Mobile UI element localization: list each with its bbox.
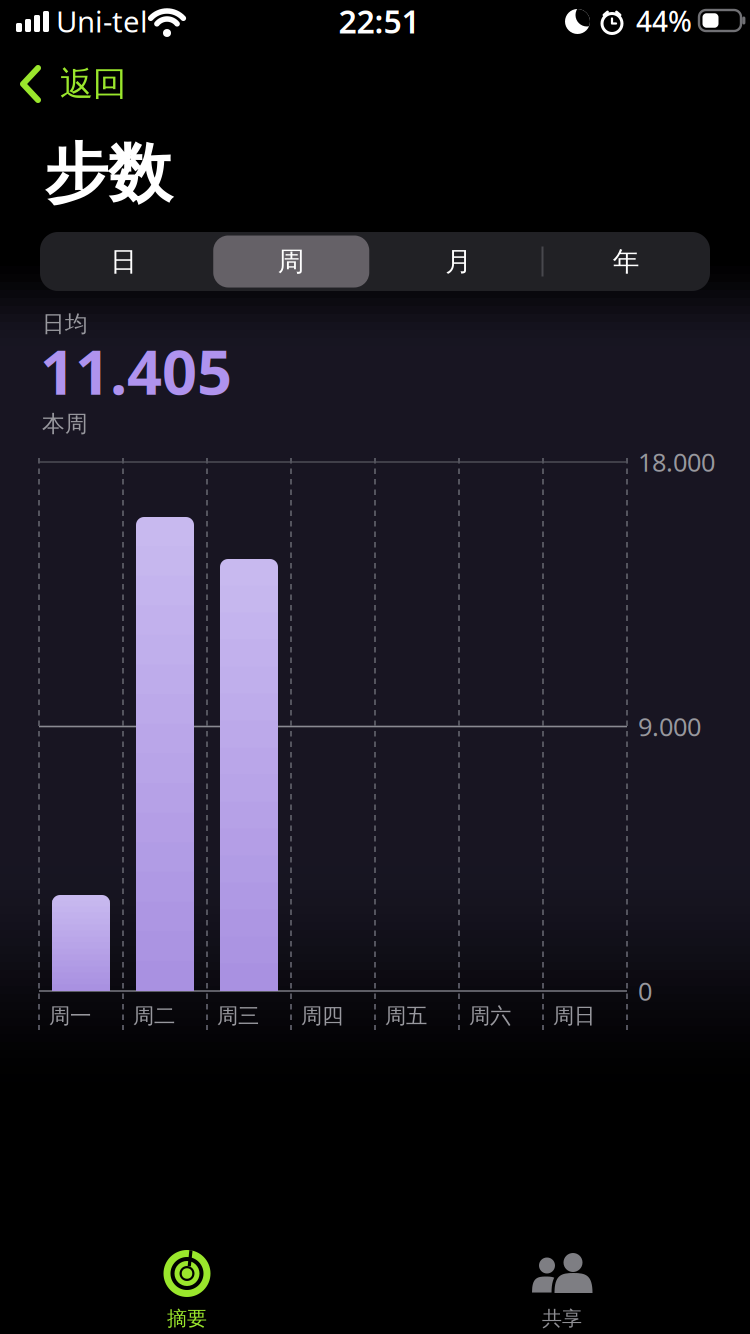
staticText: 9.000	[638, 710, 701, 743]
staticText: 18.000	[638, 445, 715, 479]
button[interactable]: 月	[379, 235, 539, 287]
button[interactable]: 共享	[375, 1214, 750, 1334]
staticText: 返回	[60, 63, 126, 104]
staticText: 周一	[49, 1003, 91, 1029]
staticText: 周二	[133, 1003, 175, 1029]
staticText: 44%	[636, 2, 692, 40]
staticText: 周三	[217, 1003, 259, 1029]
staticText: 周五	[385, 1003, 427, 1029]
staticText: 周日	[553, 1003, 595, 1029]
staticText: 日均	[42, 310, 88, 338]
staticText: 周六	[469, 1003, 511, 1029]
staticText: 周四	[301, 1003, 343, 1029]
staticText: 11.405	[40, 330, 232, 412]
staticText: 年	[613, 245, 640, 278]
button[interactable]: 返回	[20, 63, 126, 104]
button[interactable]: 摘要	[0, 1214, 375, 1334]
button[interactable]: 年	[546, 235, 706, 287]
staticText: 0	[638, 974, 652, 1008]
staticText: 本周	[42, 410, 88, 438]
staticText: 日	[110, 245, 137, 278]
button[interactable]: 日	[44, 235, 204, 287]
staticText: 22:51	[338, 0, 419, 42]
staticText: 摘要	[167, 1306, 207, 1331]
staticText: Uni-tel	[56, 1, 148, 40]
staticText: 月	[445, 245, 472, 278]
staticText: 步数	[44, 135, 172, 213]
button[interactable]: 周	[213, 235, 369, 287]
staticText: 周	[278, 245, 305, 278]
staticText: 共享	[542, 1306, 582, 1331]
